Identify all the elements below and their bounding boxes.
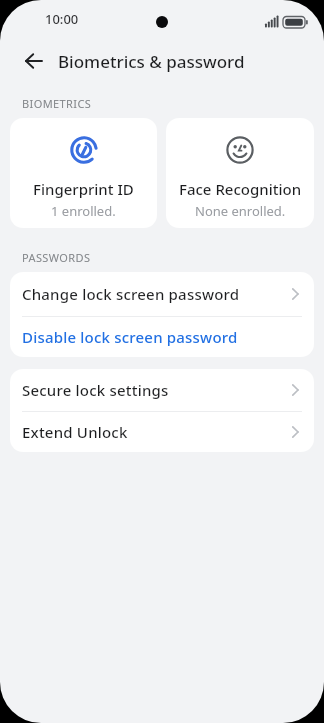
staticText: Face Recognition	[179, 179, 302, 199]
staticText: 10:00	[45, 10, 79, 28]
button[interactable]: Face Recognition	[166, 118, 314, 228]
staticText: Disable lock screen password	[22, 327, 238, 347]
staticText: None enrolled.	[195, 202, 286, 220]
staticText: Biometrics & password	[58, 50, 245, 73]
button[interactable]: Change lock screen password	[10, 272, 314, 316]
button[interactable]: Extend Unlock	[10, 412, 314, 452]
staticText: PASSWORDS	[22, 250, 91, 265]
staticText: Fingerprint ID	[33, 179, 134, 199]
button[interactable]: Secure lock settings	[10, 369, 314, 411]
staticText: Extend Unlock	[22, 422, 128, 442]
staticText: Secure lock settings	[22, 380, 169, 400]
staticText: 1 enrolled.	[51, 202, 116, 220]
button[interactable]: Disable lock screen password	[10, 317, 314, 357]
button[interactable]	[14, 44, 54, 78]
staticText: Change lock screen password	[22, 284, 240, 304]
button[interactable]: Fingerprint ID	[10, 118, 157, 228]
staticText: BIOMETRICS	[22, 96, 92, 111]
